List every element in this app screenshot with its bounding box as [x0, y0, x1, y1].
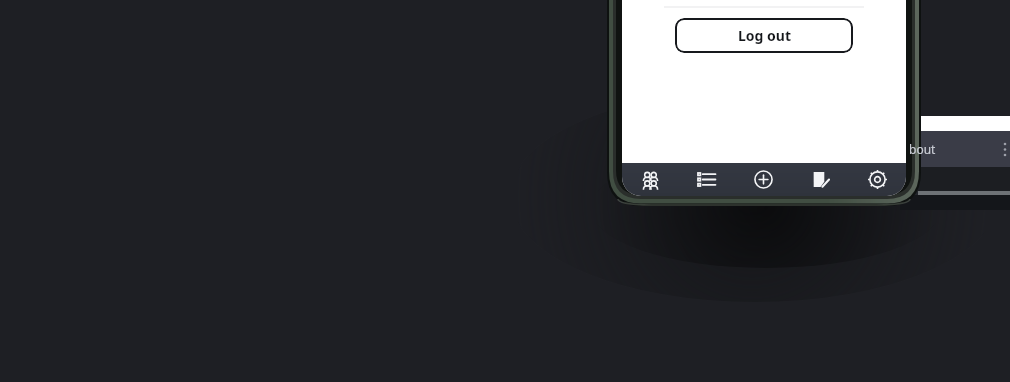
button[interactable]: More options: [999, 139, 1010, 159]
staticText: bout: [909, 141, 936, 157]
button[interactable]: Add: [735, 163, 792, 196]
button[interactable]: Notes: [792, 163, 849, 196]
button[interactable]: Lists: [678, 163, 735, 196]
staticText: Log out: [738, 26, 791, 45]
button[interactable]: Groups: [622, 163, 678, 196]
button[interactable]: Settings: [849, 163, 906, 196]
button[interactable]: Log out: [675, 18, 853, 53]
